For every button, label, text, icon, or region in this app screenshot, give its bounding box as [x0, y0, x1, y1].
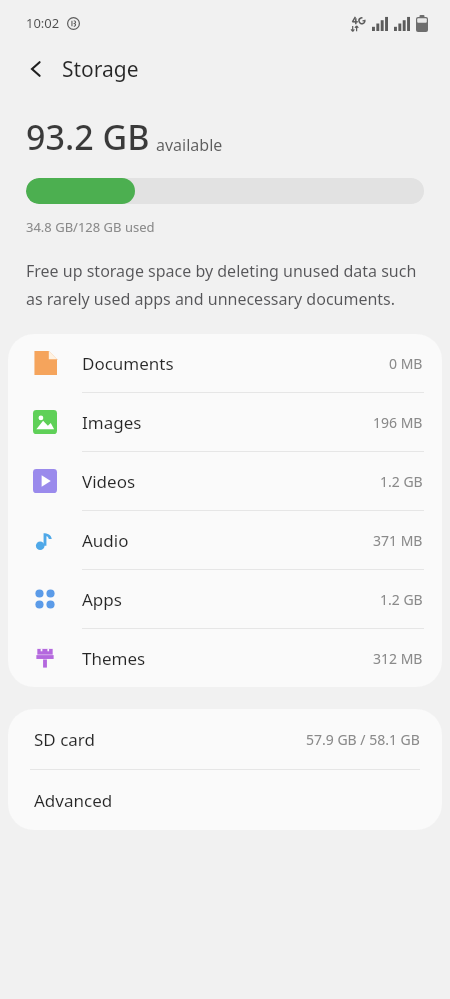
button[interactable]: Back: [16, 49, 56, 89]
staticText: 1.2 GB: [380, 472, 423, 491]
staticText: 34.8 GB/128 GB used: [26, 218, 155, 236]
staticText: Images: [82, 411, 142, 434]
staticText: Documents: [82, 352, 174, 375]
staticText: Audio: [82, 529, 129, 552]
button[interactable]: Documents: [8, 334, 442, 392]
staticText: 93.2 GB: [26, 114, 150, 160]
staticText: 312 MB: [373, 649, 423, 668]
staticText: 57.9 GB / 58.1 GB: [306, 730, 420, 749]
button[interactable]: Apps: [8, 570, 442, 628]
staticText: Advanced: [34, 789, 113, 812]
button[interactable]: Audio: [8, 511, 442, 569]
staticText: Themes: [82, 647, 146, 670]
staticText: 1.2 GB: [380, 590, 423, 609]
staticText: Storage: [62, 55, 139, 84]
button[interactable]: Advanced: [8, 770, 442, 830]
button[interactable]: SD card: [8, 709, 442, 769]
staticText: Apps: [82, 588, 122, 611]
staticText: 10:02: [26, 14, 60, 32]
button[interactable]: Images: [8, 393, 442, 451]
staticText: 371 MB: [373, 531, 423, 550]
staticText: 0 MB: [389, 354, 423, 373]
button[interactable]: Themes: [8, 629, 442, 687]
button[interactable]: Videos: [8, 452, 442, 510]
staticText: available: [156, 134, 223, 156]
staticText: 196 MB: [373, 413, 423, 432]
staticText: Free up storage space by deleting unused…: [26, 260, 424, 310]
staticText: Videos: [82, 470, 136, 493]
staticText: SD card: [34, 728, 95, 751]
